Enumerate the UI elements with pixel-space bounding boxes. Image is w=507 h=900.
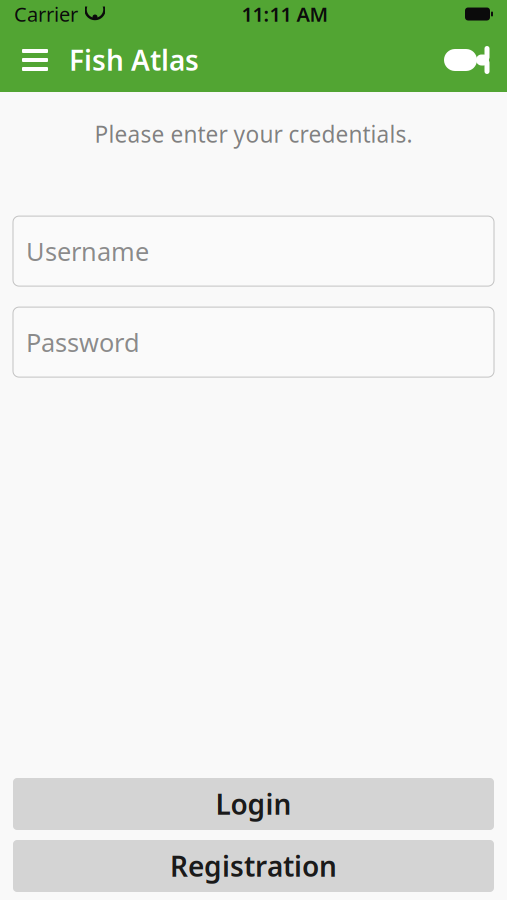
button[interactable]: Login [13,778,494,830]
staticText: Registration [170,847,337,885]
button[interactable]: Fish Atlas [436,35,498,85]
staticText: Fish Atlas [69,41,199,79]
staticText: Carrier [14,1,78,27]
staticText: Please enter your credentials. [94,119,412,149]
staticText: Username [26,234,149,268]
button[interactable]: Menu [9,35,61,85]
button[interactable]: Registration [13,840,494,892]
staticText: 11:11 AM [241,1,328,27]
staticText: Password [26,325,140,359]
staticText: Login [215,785,291,823]
